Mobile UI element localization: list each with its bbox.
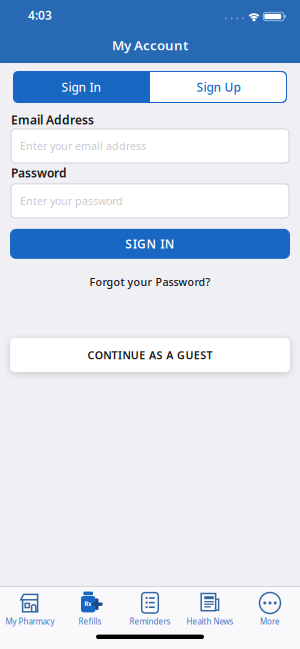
button[interactable]: My Pharmacy: [0, 591, 60, 627]
button[interactable]: Health News: [180, 591, 240, 627]
button[interactable]: Sign Up: [150, 71, 287, 103]
staticText: More: [260, 616, 280, 627]
staticText: Sign In: [61, 79, 101, 95]
staticText: Enter your email address: [20, 139, 146, 153]
button[interactable]: Rx: [60, 591, 120, 627]
staticText: SIGN IN: [125, 236, 175, 252]
staticText: My Pharmacy: [5, 616, 54, 627]
button[interactable]: Forgot your Password?: [89, 275, 210, 289]
staticText: My Account: [112, 36, 188, 54]
staticText: Rx: [84, 599, 92, 608]
staticText: Forgot your Password?: [89, 275, 210, 289]
staticText: CONTINUE AS A GUEST: [87, 348, 213, 362]
staticText: Sign Up: [196, 79, 240, 95]
staticText: Refills: [78, 616, 101, 627]
staticText: Email Address: [11, 112, 94, 128]
button[interactable]: Reminders: [120, 591, 180, 627]
staticText: Enter your password: [20, 194, 123, 208]
staticText: 4:03: [28, 7, 52, 23]
button[interactable]: More: [240, 591, 300, 627]
button[interactable]: SIGN IN: [10, 229, 290, 259]
button[interactable]: CONTINUE AS A GUEST: [10, 338, 290, 372]
staticText: Password: [11, 165, 67, 181]
staticText: Reminders: [129, 616, 170, 627]
button[interactable]: Sign In: [13, 71, 150, 103]
staticText: Health News: [186, 616, 233, 627]
